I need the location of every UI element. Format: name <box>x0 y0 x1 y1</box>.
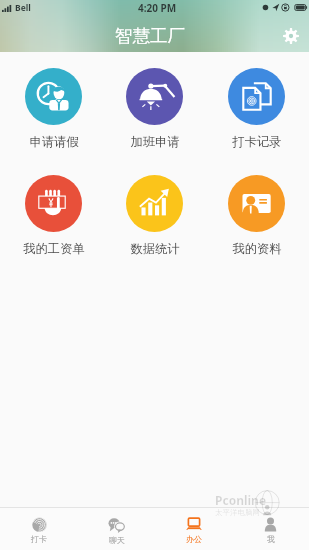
button[interactable]: 聊天 <box>78 511 155 548</box>
staticText: 4:20 PM <box>138 1 177 15</box>
staticText: 我 <box>267 534 275 544</box>
button[interactable]: Settings <box>279 24 303 48</box>
staticText: 办公 <box>186 534 202 544</box>
staticText: 聊天 <box>109 535 125 545</box>
button[interactable]: 我的工资单 <box>5 175 102 256</box>
button[interactable]: 我的资料 <box>208 175 305 256</box>
staticText: Bell <box>15 2 31 14</box>
staticText: 数据统计 <box>130 241 180 256</box>
button[interactable]: 打卡记录 <box>208 68 305 149</box>
button[interactable]: 申请请假 <box>5 68 102 149</box>
button[interactable]: 我 <box>232 512 309 547</box>
staticText: 我的工资单 <box>23 241 85 256</box>
staticText: Pconline <box>215 492 267 508</box>
staticText: 打卡 <box>31 534 47 544</box>
button[interactable]: 加班申请 <box>106 68 203 149</box>
staticText: 打卡记录 <box>232 134 282 149</box>
staticText: 智慧工厂 <box>115 25 185 47</box>
staticText: 申请请假 <box>29 134 79 149</box>
staticText: 我的资料 <box>232 241 282 256</box>
button[interactable]: 办公 <box>155 511 232 547</box>
staticText: 太平洋电脑网 <box>215 508 260 517</box>
staticText: 加班申请 <box>130 134 180 149</box>
button[interactable]: 打卡 <box>0 512 78 547</box>
button[interactable]: 数据统计 <box>106 175 203 256</box>
